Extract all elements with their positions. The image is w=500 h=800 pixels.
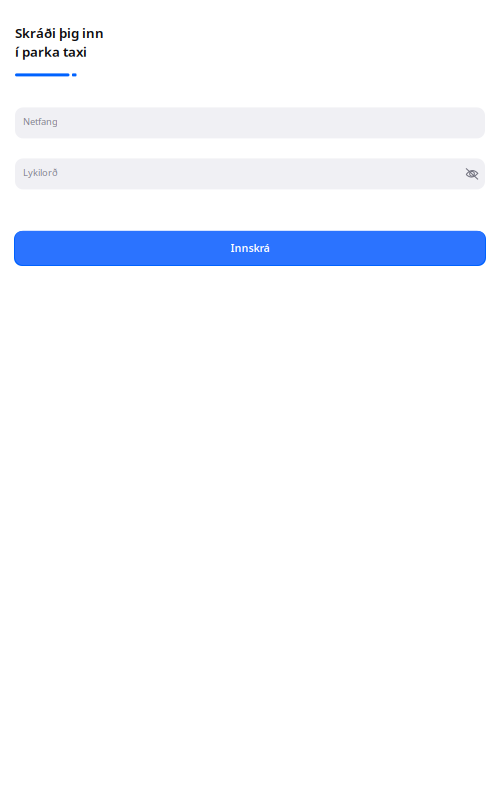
- button[interactable]: Netfang: [15, 107, 485, 138]
- button[interactable]: Lykilorð: [15, 158, 485, 189]
- button[interactable]: Show password: [465, 168, 479, 180]
- staticText: Skráði þig inn: [15, 24, 104, 42]
- staticText: Lykilorð: [23, 166, 58, 179]
- button[interactable]: Innskrá: [15, 230, 485, 265]
- staticText: Innskrá: [230, 241, 269, 255]
- staticText: Netfang: [23, 115, 58, 128]
- staticText: í parka taxi: [15, 43, 87, 60]
